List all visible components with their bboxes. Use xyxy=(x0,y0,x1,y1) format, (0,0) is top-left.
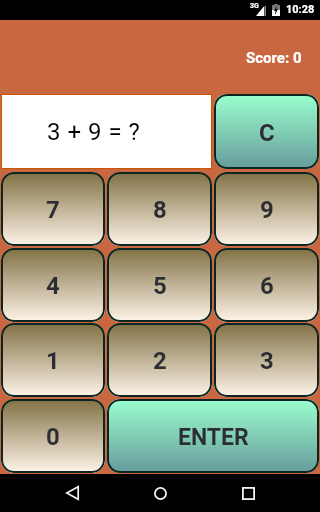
staticText: 9 xyxy=(260,196,274,224)
staticText: 8 xyxy=(153,196,167,224)
button[interactable]: C xyxy=(214,94,319,169)
button[interactable]: 3 + 9 = ? xyxy=(1,94,212,169)
staticText: 1 xyxy=(46,347,60,375)
staticText: 6 xyxy=(260,272,274,300)
button[interactable]: 6 xyxy=(214,248,319,322)
staticText: 7 xyxy=(46,196,60,224)
staticText: 5 xyxy=(153,272,167,300)
staticText: 2 xyxy=(153,347,167,375)
button[interactable]: Back xyxy=(40,477,104,509)
staticText: 3 + 9 = ? xyxy=(47,118,141,146)
staticText: 0 xyxy=(46,423,60,451)
staticText: ENTER xyxy=(178,424,249,451)
staticText: 3G xyxy=(250,2,259,10)
button[interactable]: 0 xyxy=(1,399,105,473)
button[interactable]: 9 xyxy=(214,172,319,246)
staticText: 4 xyxy=(46,272,60,300)
button[interactable]: ENTER xyxy=(107,399,319,473)
button[interactable]: 4 xyxy=(1,248,105,322)
staticText: 3 xyxy=(260,347,274,375)
button[interactable]: Recents xyxy=(216,477,280,509)
staticText: 10:28 xyxy=(286,3,315,16)
button[interactable]: 3 xyxy=(214,323,319,397)
staticText: Score: 0 xyxy=(246,49,302,67)
button[interactable]: Home xyxy=(128,477,192,509)
button[interactable]: 1 xyxy=(1,323,105,397)
button[interactable]: 8 xyxy=(107,172,212,246)
button[interactable]: 2 xyxy=(107,323,212,397)
button[interactable]: 5 xyxy=(107,248,212,322)
button[interactable]: 7 xyxy=(1,172,105,246)
staticText: C xyxy=(259,119,275,147)
